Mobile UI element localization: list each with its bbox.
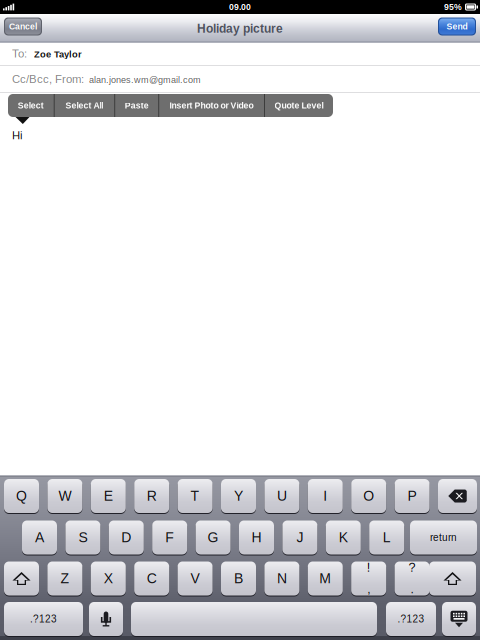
button[interactable]: Insert Photo or Video bbox=[159, 94, 264, 117]
staticText: To: bbox=[12, 47, 27, 60]
button[interactable]: ? bbox=[395, 560, 430, 596]
staticText: 09.00 bbox=[229, 2, 251, 12]
button[interactable]: P bbox=[395, 478, 430, 514]
button[interactable]: B bbox=[221, 560, 256, 596]
button[interactable]: D bbox=[109, 519, 144, 555]
button[interactable]: U bbox=[264, 478, 299, 514]
button[interactable]: L bbox=[369, 519, 404, 555]
button[interactable]: Q bbox=[4, 478, 39, 514]
staticText: alan.jones.wm@gmail.com bbox=[89, 75, 201, 85]
button[interactable]: A bbox=[22, 519, 57, 555]
staticText: T bbox=[191, 488, 200, 504]
staticText: Insert Photo or Video bbox=[170, 101, 254, 110]
staticText: B bbox=[234, 571, 243, 586]
button[interactable]: Delete bbox=[438, 478, 477, 514]
staticText: W bbox=[58, 488, 71, 504]
button[interactable]: Cancel bbox=[2, 13, 44, 39]
staticText: ! bbox=[367, 560, 371, 574]
button[interactable]: Dictate bbox=[89, 601, 123, 637]
staticText: C bbox=[147, 571, 157, 586]
button[interactable]: J bbox=[282, 519, 317, 555]
staticText: P bbox=[408, 488, 417, 504]
staticText: O bbox=[363, 488, 374, 504]
staticText: I bbox=[323, 488, 327, 504]
staticText: .?123 bbox=[30, 613, 57, 625]
button[interactable]: Y bbox=[221, 478, 256, 514]
staticText: . bbox=[411, 582, 414, 596]
button[interactable]: V bbox=[178, 560, 213, 596]
staticText: Z bbox=[60, 571, 69, 586]
button[interactable]: X bbox=[91, 560, 126, 596]
button[interactable]: Shift bbox=[429, 560, 476, 596]
staticText: ? bbox=[409, 560, 416, 574]
staticText: Hi bbox=[12, 129, 23, 142]
staticText: Holiday picture bbox=[197, 22, 283, 35]
button[interactable]: T bbox=[178, 478, 213, 514]
staticText: K bbox=[339, 530, 348, 545]
staticText: L bbox=[383, 530, 391, 545]
button[interactable]: W bbox=[47, 478, 82, 514]
staticText: V bbox=[191, 571, 200, 586]
button[interactable]: K bbox=[326, 519, 361, 555]
staticText: return bbox=[430, 532, 457, 543]
staticText: U bbox=[277, 488, 287, 504]
button[interactable]: M bbox=[308, 560, 343, 596]
staticText: Paste bbox=[125, 101, 149, 110]
button[interactable]: Paste bbox=[115, 94, 158, 117]
button[interactable]: Select bbox=[8, 94, 54, 117]
button[interactable]: Send bbox=[436, 13, 478, 39]
staticText: 95% bbox=[444, 2, 462, 12]
staticText: , bbox=[367, 582, 370, 596]
staticText: Zoe Taylor bbox=[34, 49, 82, 59]
button[interactable]: return bbox=[410, 519, 477, 555]
staticText: R bbox=[147, 488, 157, 504]
staticText: Cancel bbox=[9, 22, 37, 31]
button[interactable]: G bbox=[196, 519, 231, 555]
staticText: A bbox=[35, 530, 44, 545]
staticText: X bbox=[104, 571, 113, 586]
staticText: E bbox=[104, 488, 113, 504]
button[interactable]: .?123 bbox=[386, 601, 436, 637]
button[interactable]: Quote Level bbox=[265, 94, 333, 117]
staticText: G bbox=[208, 530, 219, 545]
button[interactable]: H bbox=[239, 519, 274, 555]
button[interactable]: S bbox=[65, 519, 100, 555]
staticText: Q bbox=[16, 488, 27, 504]
button[interactable]: E bbox=[91, 478, 126, 514]
staticText: D bbox=[121, 530, 131, 545]
button[interactable]: F bbox=[152, 519, 187, 555]
button[interactable]: O bbox=[351, 478, 386, 514]
button[interactable]: Shift bbox=[4, 560, 39, 596]
staticText: H bbox=[251, 530, 261, 545]
staticText: F bbox=[165, 530, 174, 545]
staticText: S bbox=[78, 530, 87, 545]
staticText: Cc/Bcc, From: bbox=[12, 73, 84, 85]
button[interactable]: Z bbox=[47, 560, 82, 596]
button[interactable]: Hide keyboard bbox=[442, 601, 476, 637]
button[interactable]: R bbox=[134, 478, 169, 514]
staticText: Select bbox=[18, 101, 44, 110]
button[interactable]: Select All bbox=[55, 94, 114, 117]
button[interactable]: Space bbox=[131, 601, 377, 637]
staticText: .?123 bbox=[397, 613, 424, 625]
staticText: N bbox=[277, 571, 287, 586]
button[interactable]: N bbox=[264, 560, 299, 596]
staticText: Y bbox=[234, 488, 243, 504]
staticText: M bbox=[319, 571, 331, 586]
button[interactable]: C bbox=[134, 560, 169, 596]
staticText: J bbox=[296, 530, 303, 545]
button[interactable]: .?123 bbox=[4, 601, 83, 637]
staticText: Select All bbox=[65, 101, 103, 110]
staticText: Quote Level bbox=[274, 101, 323, 110]
button[interactable]: I bbox=[308, 478, 343, 514]
button[interactable]: ! bbox=[351, 560, 386, 596]
staticText: Send bbox=[446, 22, 467, 31]
